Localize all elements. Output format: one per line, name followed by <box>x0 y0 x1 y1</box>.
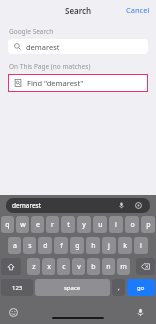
button[interactable]: 123 <box>1 279 33 296</box>
staticText: , <box>118 284 120 292</box>
staticText: l <box>140 241 142 251</box>
button[interactable]: m <box>117 258 130 275</box>
button[interactable]: e <box>31 216 44 233</box>
button[interactable]: x <box>42 258 55 275</box>
button[interactable]: Settings <box>133 200 144 211</box>
button[interactable]: Voice input <box>133 305 148 320</box>
button[interactable]: t <box>61 216 75 233</box>
other: Voice input <box>136 308 145 317</box>
button[interactable]: g <box>70 237 84 254</box>
staticText: Google Search <box>9 27 54 36</box>
staticText: s <box>28 241 32 251</box>
staticText: d <box>43 241 48 251</box>
staticText: demarest <box>12 201 116 210</box>
button[interactable]: l <box>134 237 148 254</box>
staticText: Find "demarest" <box>27 78 84 88</box>
button[interactable]: o <box>125 216 139 233</box>
staticText: v <box>77 262 81 272</box>
button[interactable]: d <box>38 237 52 254</box>
staticText: f <box>60 241 63 251</box>
button[interactable]: h <box>86 237 100 254</box>
button[interactable]: , <box>112 279 125 296</box>
staticText: x <box>47 262 51 272</box>
other: Settings <box>135 202 142 209</box>
button[interactable]: q <box>1 216 14 233</box>
staticText: w <box>20 220 26 230</box>
staticText: u <box>98 220 103 230</box>
staticText: j <box>108 241 110 251</box>
other: Search <box>14 43 21 50</box>
button[interactable]: j <box>102 237 116 254</box>
staticText: y <box>82 220 86 230</box>
button[interactable]: Shift <box>1 258 21 275</box>
button[interactable]: f <box>54 237 68 254</box>
button[interactable]: v <box>72 258 85 275</box>
staticText: q <box>5 220 10 230</box>
staticText: Cancel <box>126 5 150 15</box>
button[interactable]: space <box>35 279 110 296</box>
staticText: i <box>115 220 117 230</box>
staticText: g <box>75 241 80 251</box>
button[interactable]: w <box>16 216 29 233</box>
button[interactable]: z <box>27 258 40 275</box>
button[interactable]: demarest <box>6 198 150 213</box>
staticText: p <box>146 220 151 230</box>
staticText: b <box>91 262 96 272</box>
staticText: t <box>67 220 70 230</box>
button[interactable]: r <box>46 216 59 233</box>
button[interactable]: a <box>8 237 21 254</box>
button[interactable]: y <box>77 216 91 233</box>
button[interactable]: n <box>102 258 115 275</box>
other: Voice input <box>118 202 125 209</box>
staticText: On This Page (no matches) <box>9 62 91 71</box>
button[interactable]: u <box>93 216 107 233</box>
button[interactable]: go <box>127 279 155 296</box>
button[interactable]: k <box>118 237 132 254</box>
staticText: z <box>32 262 36 272</box>
staticText: Search <box>65 5 92 16</box>
button[interactable]: c <box>57 258 70 275</box>
staticText: r <box>51 220 54 230</box>
button[interactable]: Emoji <box>6 305 21 320</box>
staticText: demarest <box>26 42 60 52</box>
button[interactable]: Cancel <box>120 2 156 18</box>
staticText: 123 <box>12 284 23 292</box>
button[interactable]: Search <box>8 39 148 54</box>
button[interactable]: p <box>141 216 155 233</box>
staticText: n <box>106 262 111 272</box>
staticText: space <box>64 284 81 292</box>
other: Find in page <box>14 79 22 87</box>
staticText: m <box>120 262 127 272</box>
staticText: h <box>91 241 96 251</box>
button[interactable]: Backspace <box>136 258 155 275</box>
button[interactable]: b <box>87 258 100 275</box>
staticText: go <box>137 284 145 292</box>
other: Emoji <box>9 308 18 317</box>
staticText: c <box>62 262 66 272</box>
staticText: k <box>123 241 127 251</box>
button[interactable]: s <box>23 237 36 254</box>
staticText: e <box>36 220 40 230</box>
button[interactable]: Voice input <box>116 200 127 211</box>
staticText: a <box>13 241 17 251</box>
staticText: o <box>130 220 135 230</box>
button[interactable]: i <box>109 216 123 233</box>
button[interactable]: Find in page <box>8 74 148 92</box>
